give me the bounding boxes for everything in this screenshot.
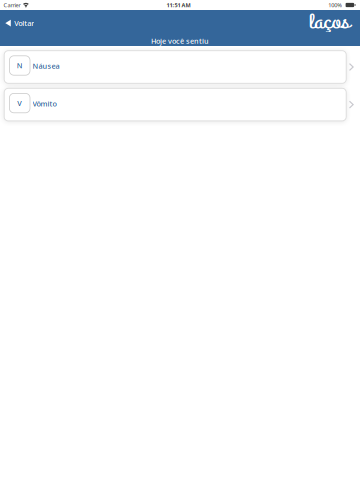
staticText: 11:51 AM <box>166 1 190 9</box>
staticText: 100% <box>328 1 342 9</box>
staticText: V <box>17 98 22 108</box>
staticText: laços <box>314 8 344 36</box>
staticText: Náusea <box>33 61 60 71</box>
button[interactable]: N <box>4 51 360 83</box>
staticText: Carrier <box>3 1 20 9</box>
staticText: Voltar <box>14 18 34 28</box>
staticText: Hoje você sentiu <box>151 36 209 46</box>
staticText: Vômito <box>33 99 57 109</box>
button[interactable]: V <box>4 88 360 121</box>
button[interactable]: Voltar <box>0 15 42 32</box>
staticText: N <box>17 60 23 70</box>
